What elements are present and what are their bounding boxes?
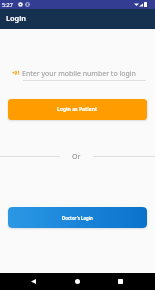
button[interactable]: Doctor's Login xyxy=(8,207,147,228)
staticText: +91 xyxy=(12,70,20,76)
button[interactable]: Login as Patient xyxy=(8,99,147,120)
button[interactable]: Home xyxy=(69,273,85,289)
button[interactable]: Back xyxy=(25,273,41,289)
staticText: 5:27 xyxy=(2,1,13,8)
staticText: Login xyxy=(6,13,27,23)
staticText: Or xyxy=(72,152,81,162)
staticText: Enter your mobile number to login xyxy=(22,69,136,79)
staticText: Login as Patient xyxy=(57,106,98,113)
button[interactable]: Recent apps xyxy=(112,273,128,289)
staticText: Doctor's Login xyxy=(62,215,93,221)
